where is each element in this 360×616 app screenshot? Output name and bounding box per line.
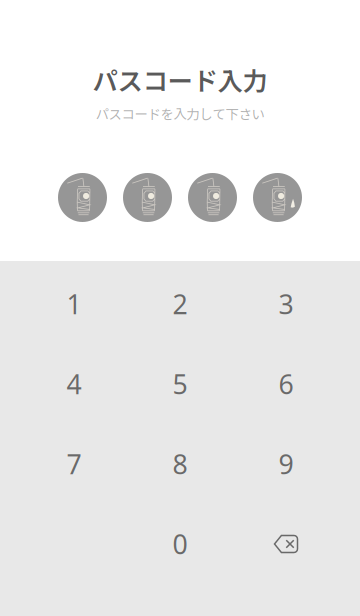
staticText: 8 <box>172 446 187 482</box>
staticText: パスコードを入力して下さい <box>95 104 264 123</box>
button[interactable]: 9 <box>233 424 339 504</box>
button[interactable]: 2 <box>127 264 233 344</box>
staticText: パスコード入力 <box>92 61 267 98</box>
staticText: 4 <box>66 366 81 402</box>
staticText: 7 <box>66 446 81 482</box>
staticText: 2 <box>172 286 187 322</box>
button[interactable]: 8 <box>127 424 233 504</box>
staticText: 3 <box>278 286 293 322</box>
staticText: 9 <box>278 446 293 482</box>
staticText: 0 <box>172 526 187 562</box>
staticText: 5 <box>172 366 187 402</box>
staticText: 6 <box>278 366 293 402</box>
button[interactable]: 5 <box>127 344 233 424</box>
staticText: 1 <box>66 286 81 322</box>
button[interactable]: 1 <box>21 264 127 344</box>
button[interactable]: 削除 <box>233 504 339 584</box>
button[interactable]: 3 <box>233 264 339 344</box>
button[interactable]: 7 <box>21 424 127 504</box>
button[interactable]: 6 <box>233 344 339 424</box>
button[interactable]: 0 <box>127 504 233 584</box>
button[interactable]: 4 <box>21 344 127 424</box>
